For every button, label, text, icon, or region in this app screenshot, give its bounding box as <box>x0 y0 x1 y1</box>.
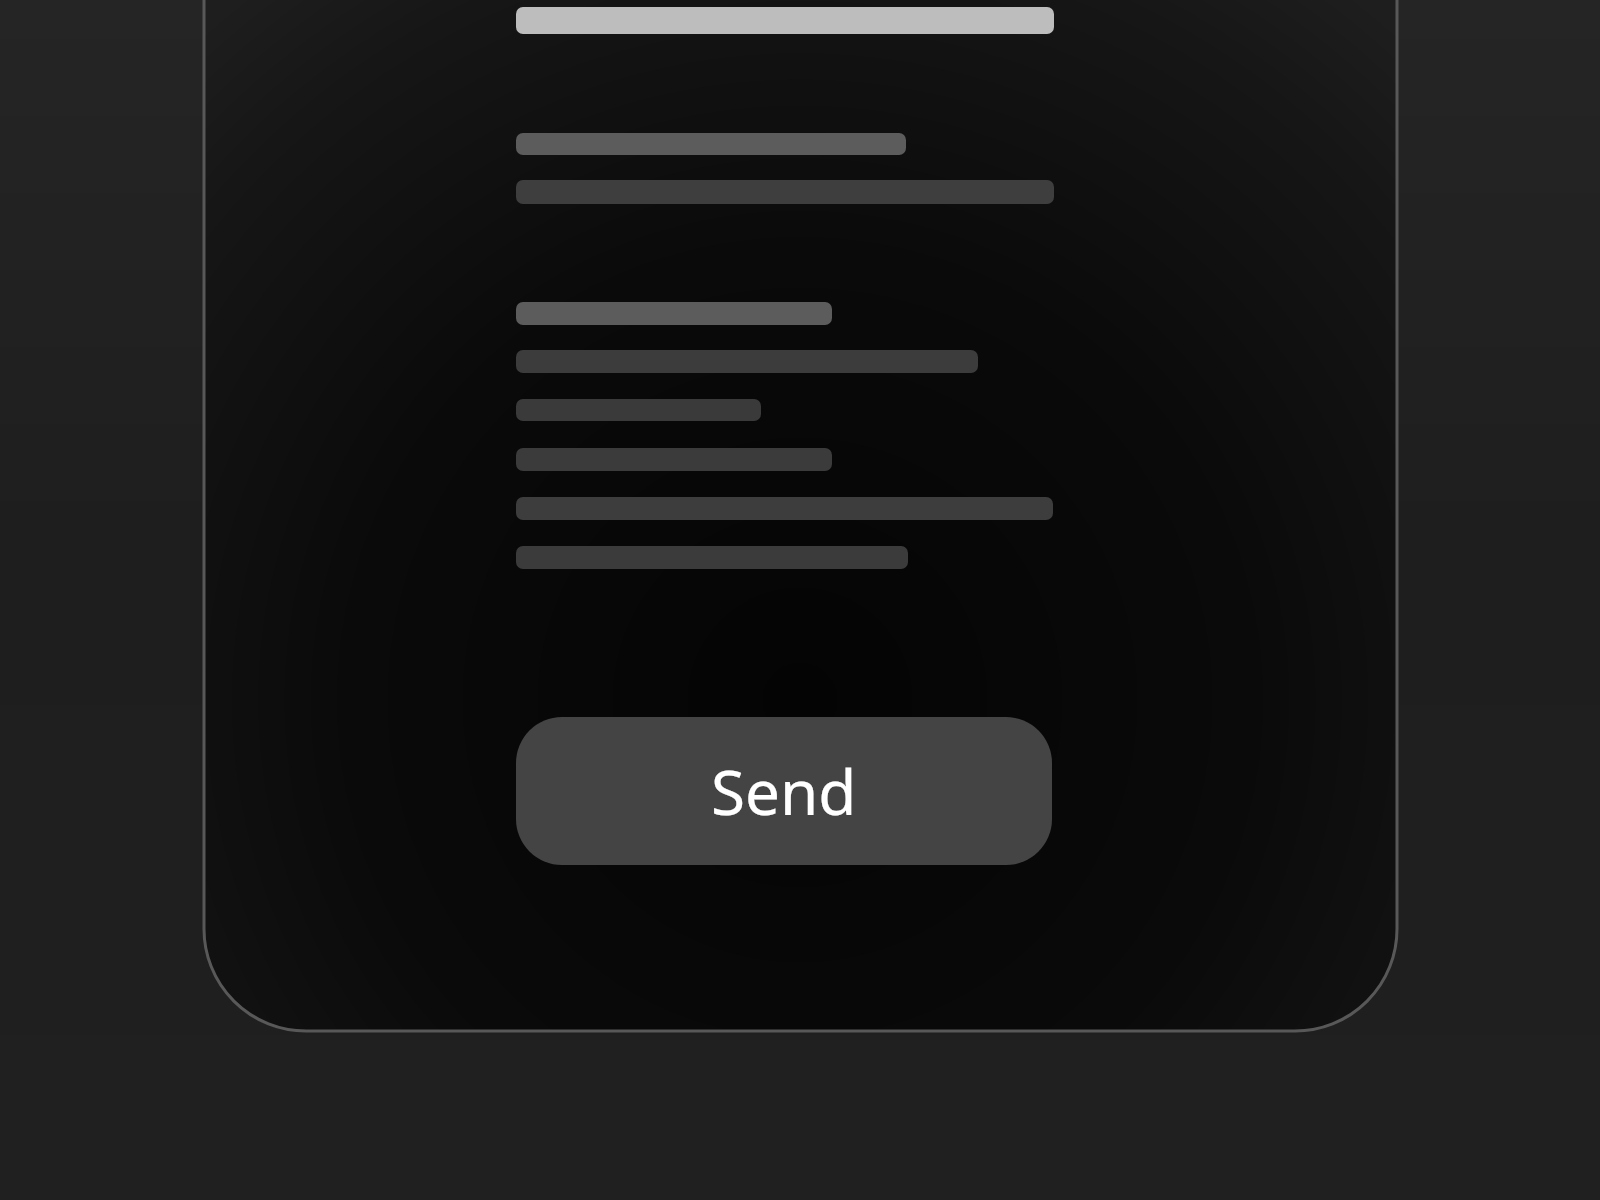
button[interactable]: Send <box>516 717 1052 865</box>
staticText: Send <box>711 749 857 833</box>
